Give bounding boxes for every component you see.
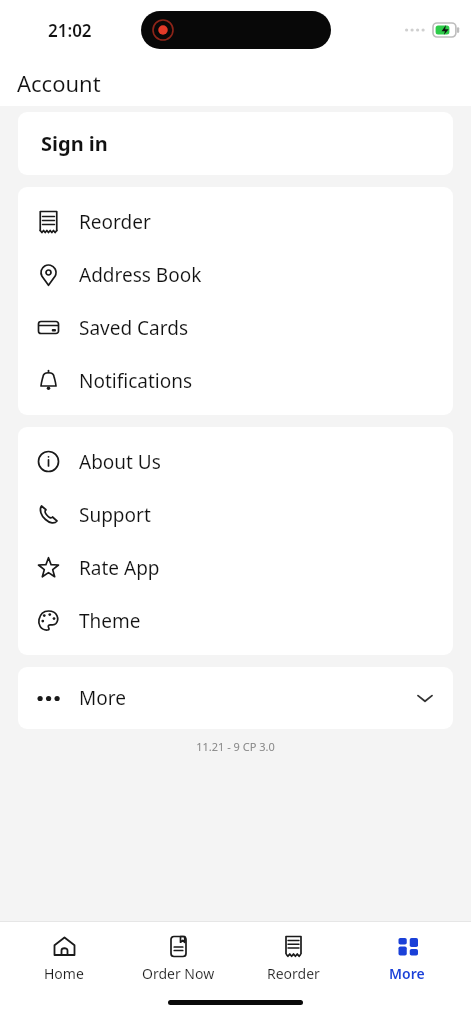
button[interactable]: Theme bbox=[18, 594, 453, 647]
staticText: Sign in bbox=[41, 130, 108, 157]
button[interactable]: Rate App bbox=[18, 541, 453, 594]
button[interactable]: Sign in bbox=[18, 112, 453, 175]
button[interactable]: Saved Cards bbox=[18, 301, 453, 354]
staticText: 11.21 - 9 CP 3.0 bbox=[0, 739, 471, 754]
staticText: Account bbox=[17, 68, 101, 98]
staticText: Support bbox=[79, 502, 151, 528]
staticText: Rate App bbox=[79, 555, 160, 581]
staticText: Theme bbox=[79, 608, 141, 634]
staticText: About Us bbox=[79, 449, 161, 475]
staticText: 21:02 bbox=[48, 19, 92, 42]
button[interactable]: Order Now bbox=[128, 930, 228, 987]
button[interactable]: Home bbox=[14, 930, 114, 987]
button[interactable]: More bbox=[18, 667, 453, 729]
staticText: More bbox=[79, 685, 126, 711]
button[interactable]: More bbox=[357, 930, 457, 987]
staticText: Notifications bbox=[79, 368, 193, 394]
staticText: Address Book bbox=[79, 262, 202, 288]
button[interactable]: About Us bbox=[18, 435, 453, 488]
button[interactable]: Reorder bbox=[243, 930, 343, 987]
staticText: Saved Cards bbox=[79, 315, 189, 341]
staticText: Reorder bbox=[79, 209, 151, 235]
button[interactable]: Address Book bbox=[18, 248, 453, 301]
staticText: Order Now bbox=[142, 964, 215, 983]
staticText: Reorder bbox=[267, 964, 320, 983]
button[interactable]: Notifications bbox=[18, 354, 453, 407]
staticText: More bbox=[389, 964, 425, 983]
button[interactable]: Support bbox=[18, 488, 453, 541]
staticText: Home bbox=[44, 964, 84, 983]
button[interactable]: Reorder bbox=[18, 195, 453, 248]
